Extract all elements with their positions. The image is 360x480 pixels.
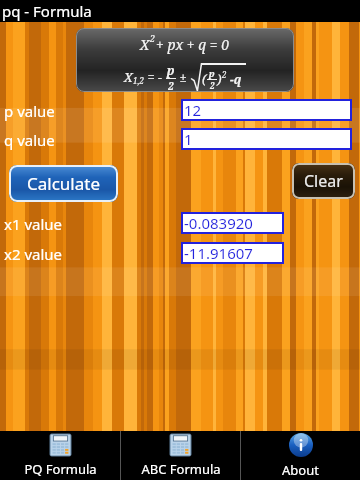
button[interactable]: PQ Formula bbox=[0, 431, 120, 480]
staticText: -0.083920 bbox=[184, 213, 253, 233]
staticText: -11.91607 bbox=[184, 243, 253, 263]
button[interactable]: 12 bbox=[181, 99, 352, 121]
staticText: PQ Formula bbox=[24, 460, 97, 478]
staticText: q value bbox=[4, 130, 55, 150]
staticText: 2 bbox=[222, 69, 227, 80]
button[interactable]: ABC Formula bbox=[121, 431, 240, 480]
staticText: x1 value bbox=[4, 214, 63, 234]
staticText: 12 bbox=[184, 100, 202, 120]
staticText: ± bbox=[176, 68, 191, 86]
staticText: = - bbox=[144, 68, 166, 86]
staticText: X bbox=[140, 35, 150, 54]
staticText: About bbox=[282, 461, 319, 479]
staticText: ( bbox=[202, 70, 207, 88]
staticText: pq - Formula bbox=[2, 1, 92, 21]
staticText: Calculate bbox=[27, 172, 100, 195]
staticText: 2 bbox=[168, 79, 174, 92]
staticText: ) bbox=[217, 70, 222, 88]
other: About bbox=[289, 433, 313, 457]
staticText: -q bbox=[227, 71, 242, 87]
staticText: p bbox=[167, 62, 175, 78]
staticText: X bbox=[124, 68, 133, 86]
button[interactable]: About bbox=[241, 431, 360, 480]
staticText: Clear bbox=[304, 170, 343, 192]
button[interactable]: -0.083920 bbox=[181, 212, 284, 234]
staticText: 2 bbox=[210, 80, 215, 91]
staticText: 1,2 bbox=[133, 75, 144, 86]
button[interactable]: 1 bbox=[181, 128, 352, 150]
button[interactable]: Clear bbox=[292, 163, 355, 199]
staticText: x2 value bbox=[4, 244, 63, 264]
staticText: ABC Formula bbox=[141, 460, 221, 478]
staticText: 1 bbox=[184, 129, 193, 149]
staticText: p value bbox=[4, 101, 55, 121]
staticText: + px + q = 0 bbox=[156, 35, 230, 54]
button[interactable]: -11.91607 bbox=[181, 242, 284, 264]
staticText: p bbox=[209, 67, 215, 79]
staticText: 2 bbox=[150, 32, 156, 44]
button[interactable]: Calculate bbox=[9, 165, 118, 202]
